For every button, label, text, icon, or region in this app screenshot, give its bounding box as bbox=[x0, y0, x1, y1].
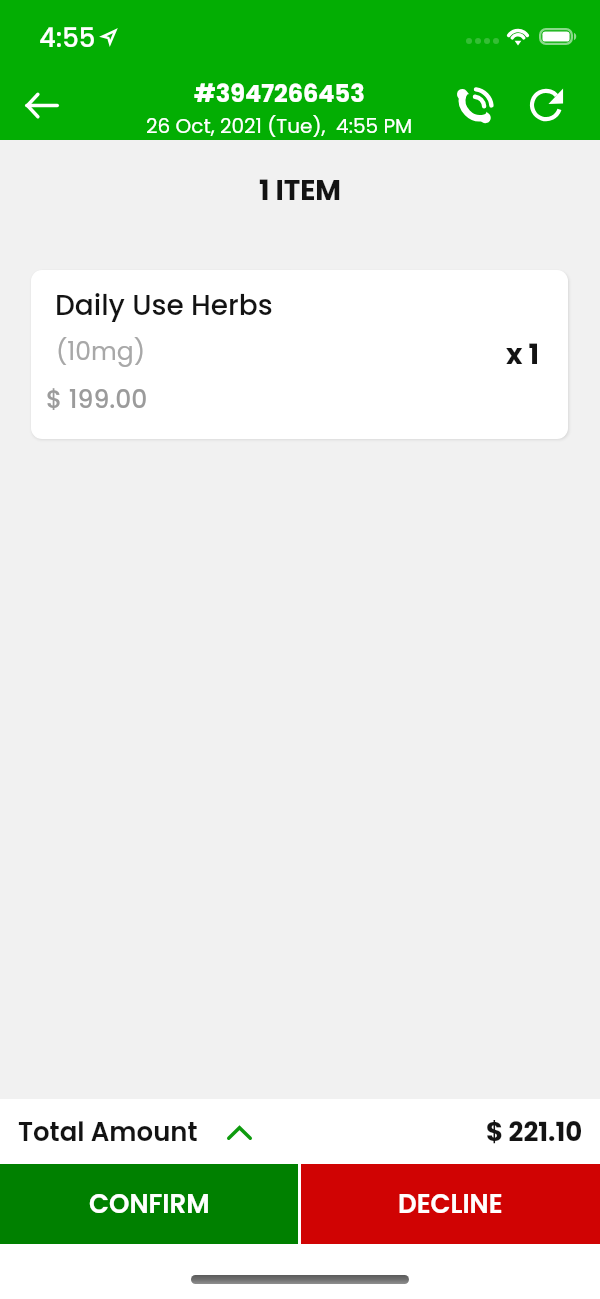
button[interactable]: Back bbox=[14, 77, 70, 133]
button[interactable]: DECLINE bbox=[301, 1164, 600, 1244]
button[interactable]: Total Amount bbox=[0, 1099, 600, 1164]
staticText: Total Amount bbox=[18, 1114, 198, 1150]
button[interactable]: Call bbox=[449, 78, 503, 132]
staticText: $ 199.00 bbox=[46, 382, 148, 417]
button[interactable]: CONFIRM bbox=[0, 1164, 298, 1244]
button[interactable]: Refresh bbox=[522, 78, 576, 132]
staticText: $ 221.10 bbox=[486, 1114, 583, 1150]
staticText: DECLINE bbox=[398, 1186, 503, 1222]
staticText: #3947266453 bbox=[194, 77, 365, 111]
staticText: 1 ITEM bbox=[0, 171, 600, 210]
staticText: (10mg) bbox=[56, 334, 146, 369]
button[interactable]: Daily Use Herbs bbox=[31, 270, 568, 439]
staticText: CONFIRM bbox=[89, 1186, 210, 1222]
staticText: Daily Use Herbs bbox=[55, 286, 273, 325]
staticText: x 1 bbox=[506, 335, 539, 374]
staticText: 26 Oct, 2021 (Tue), 4:55 PM bbox=[146, 112, 413, 140]
staticText: 4:55 bbox=[39, 20, 96, 56]
